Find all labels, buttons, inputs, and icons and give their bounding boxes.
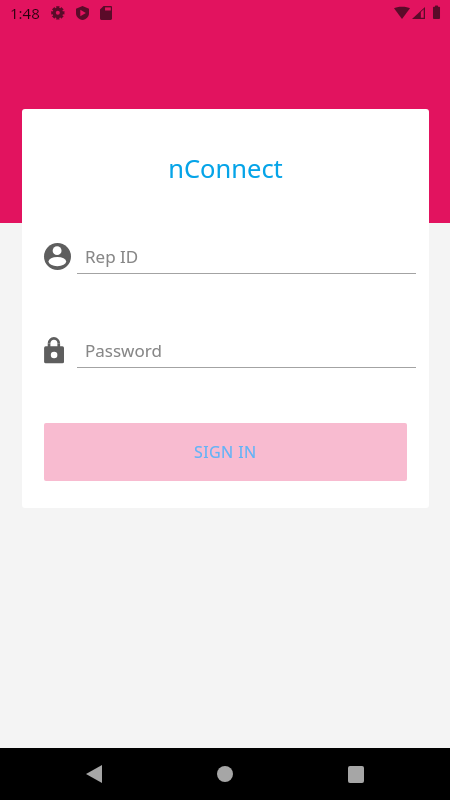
staticText: nConnect <box>22 151 429 186</box>
staticText: 1:48 <box>10 3 40 23</box>
staticText: Rep ID <box>85 245 139 268</box>
button[interactable]: Recent apps <box>330 748 382 800</box>
button[interactable]: Back <box>68 748 120 800</box>
button[interactable]: SIGN IN <box>44 423 407 481</box>
staticText: Password <box>85 339 162 362</box>
button[interactable]: Home <box>199 748 251 800</box>
button[interactable]: Password <box>44 336 429 368</box>
button[interactable]: Rep ID <box>44 242 429 274</box>
staticText: SIGN IN <box>194 441 257 463</box>
